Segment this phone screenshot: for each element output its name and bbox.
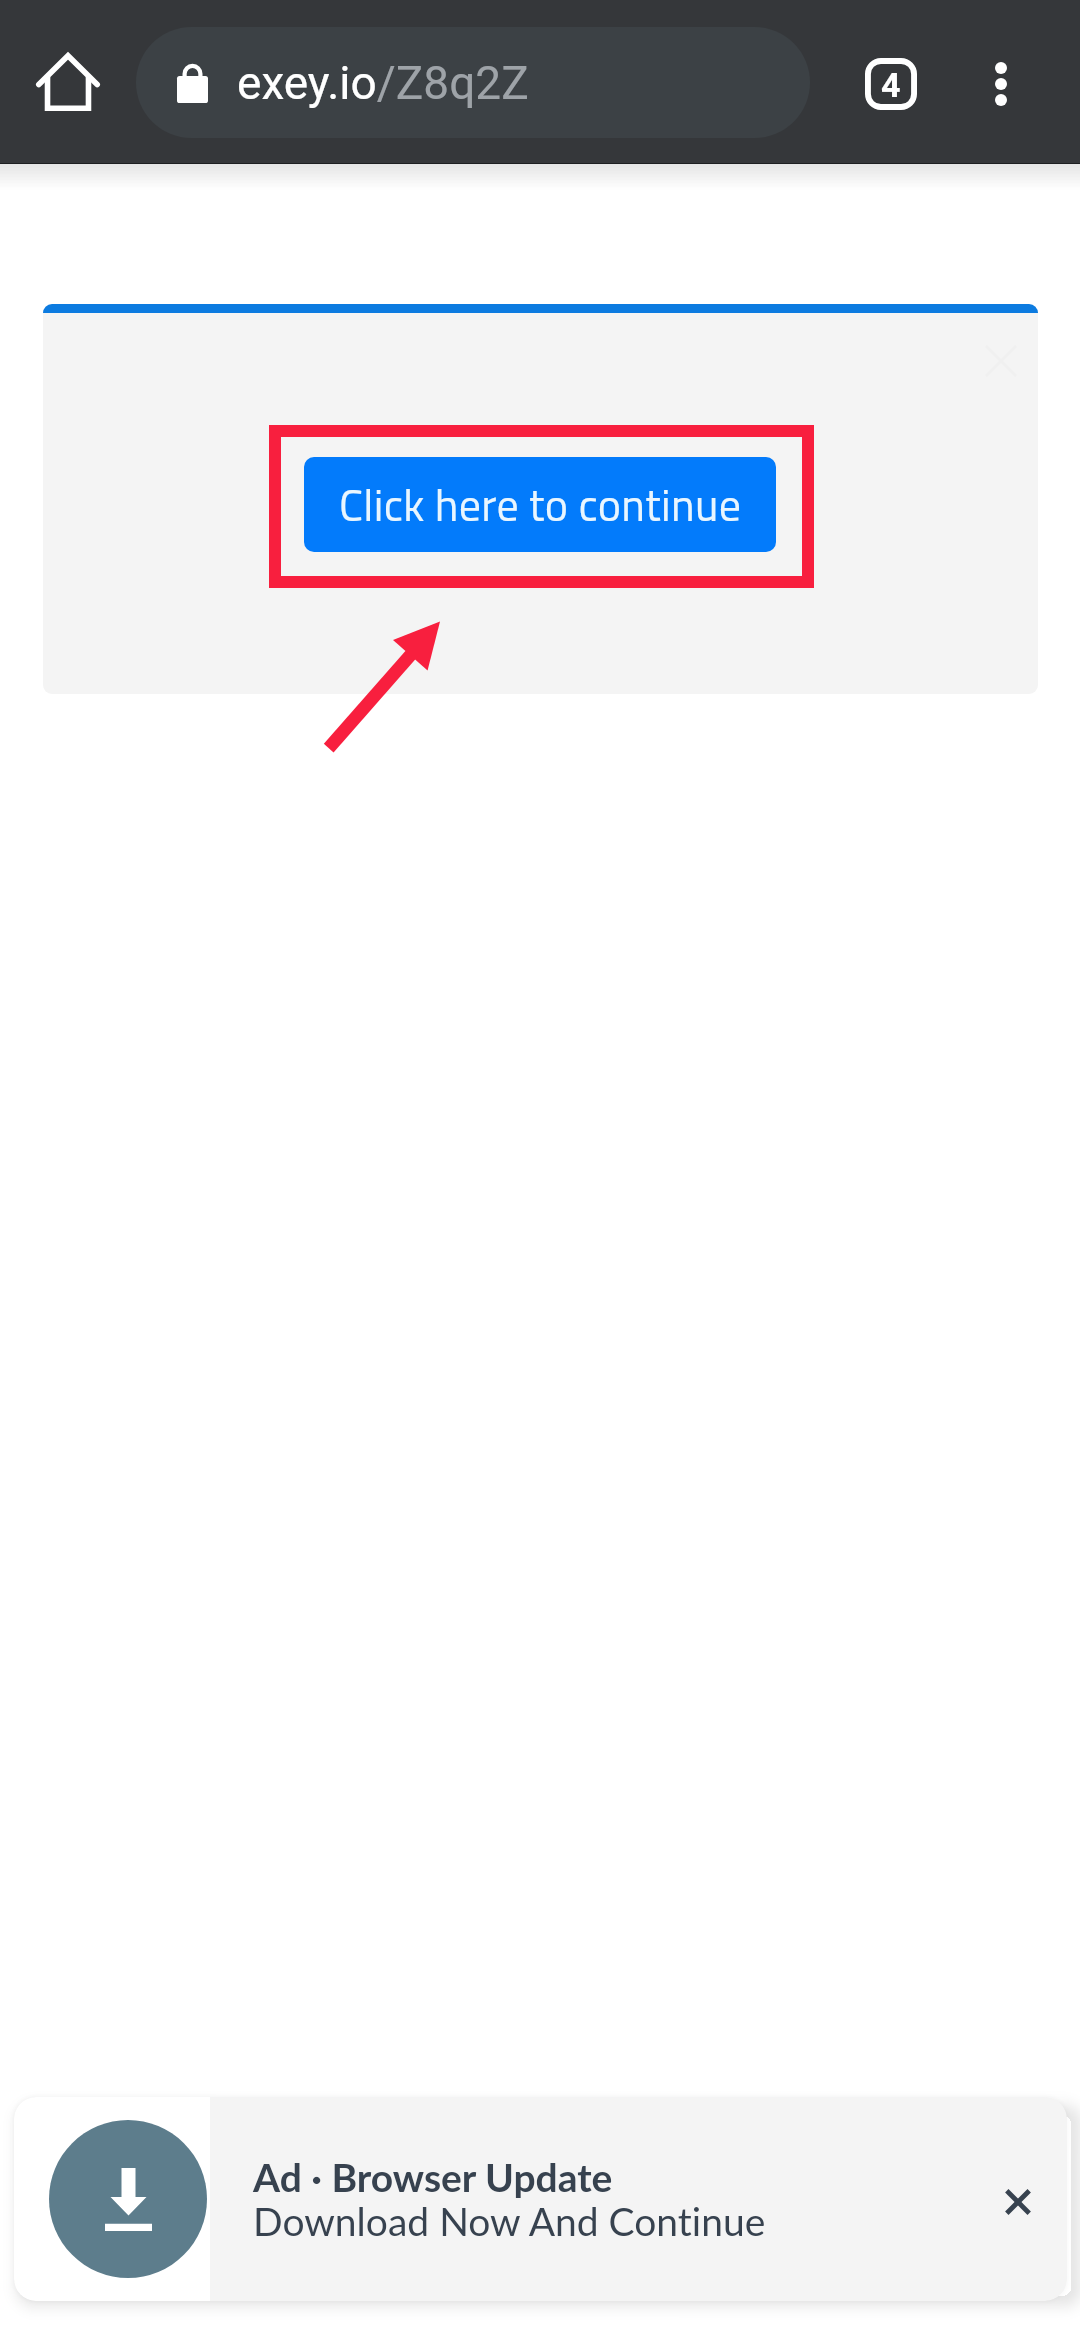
button[interactable]: exey.io/Z8q2Z (136, 27, 810, 138)
staticText: Ad · Browser Update (253, 2154, 613, 2201)
staticText: Click here to continue (339, 471, 742, 538)
button[interactable]: Ad · Browser Update (14, 2097, 1067, 2301)
staticText: exey.io/Z8q2Z (237, 56, 529, 110)
button[interactable]: Dismiss ad (978, 2162, 1058, 2242)
button[interactable]: Click here to continue (304, 457, 776, 552)
button[interactable]: Home (26, 40, 110, 124)
staticText: Download Now And Continue (253, 2198, 766, 2245)
button[interactable]: Switch tabs, 4 open (845, 38, 937, 130)
staticText: 4 (881, 65, 901, 105)
button[interactable]: More options (955, 38, 1047, 130)
